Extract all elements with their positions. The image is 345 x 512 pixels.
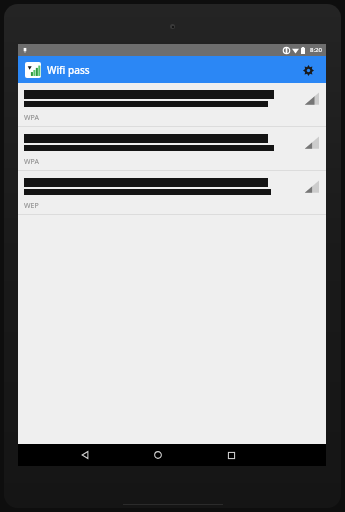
- staticText: WPA: [24, 157, 39, 167]
- button[interactable]: Back: [73, 444, 97, 466]
- staticText: WEP: [24, 201, 39, 211]
- button[interactable]: Signal strength: [18, 83, 326, 127]
- button[interactable]: Settings: [297, 59, 319, 81]
- other: Signal strength: [302, 177, 320, 195]
- staticText: WPA: [24, 113, 39, 123]
- other: Signal strength: [302, 89, 320, 107]
- button[interactable]: Recent apps: [219, 444, 243, 466]
- button[interactable]: Signal strength: [18, 127, 326, 171]
- button[interactable]: Signal strength: [18, 171, 326, 215]
- staticText: Wifi pass: [47, 63, 90, 77]
- other: Signal strength: [302, 133, 320, 151]
- staticText: 8:20: [310, 46, 322, 54]
- button[interactable]: Wifi pass: [25, 62, 41, 78]
- button[interactable]: Home: [146, 444, 170, 466]
